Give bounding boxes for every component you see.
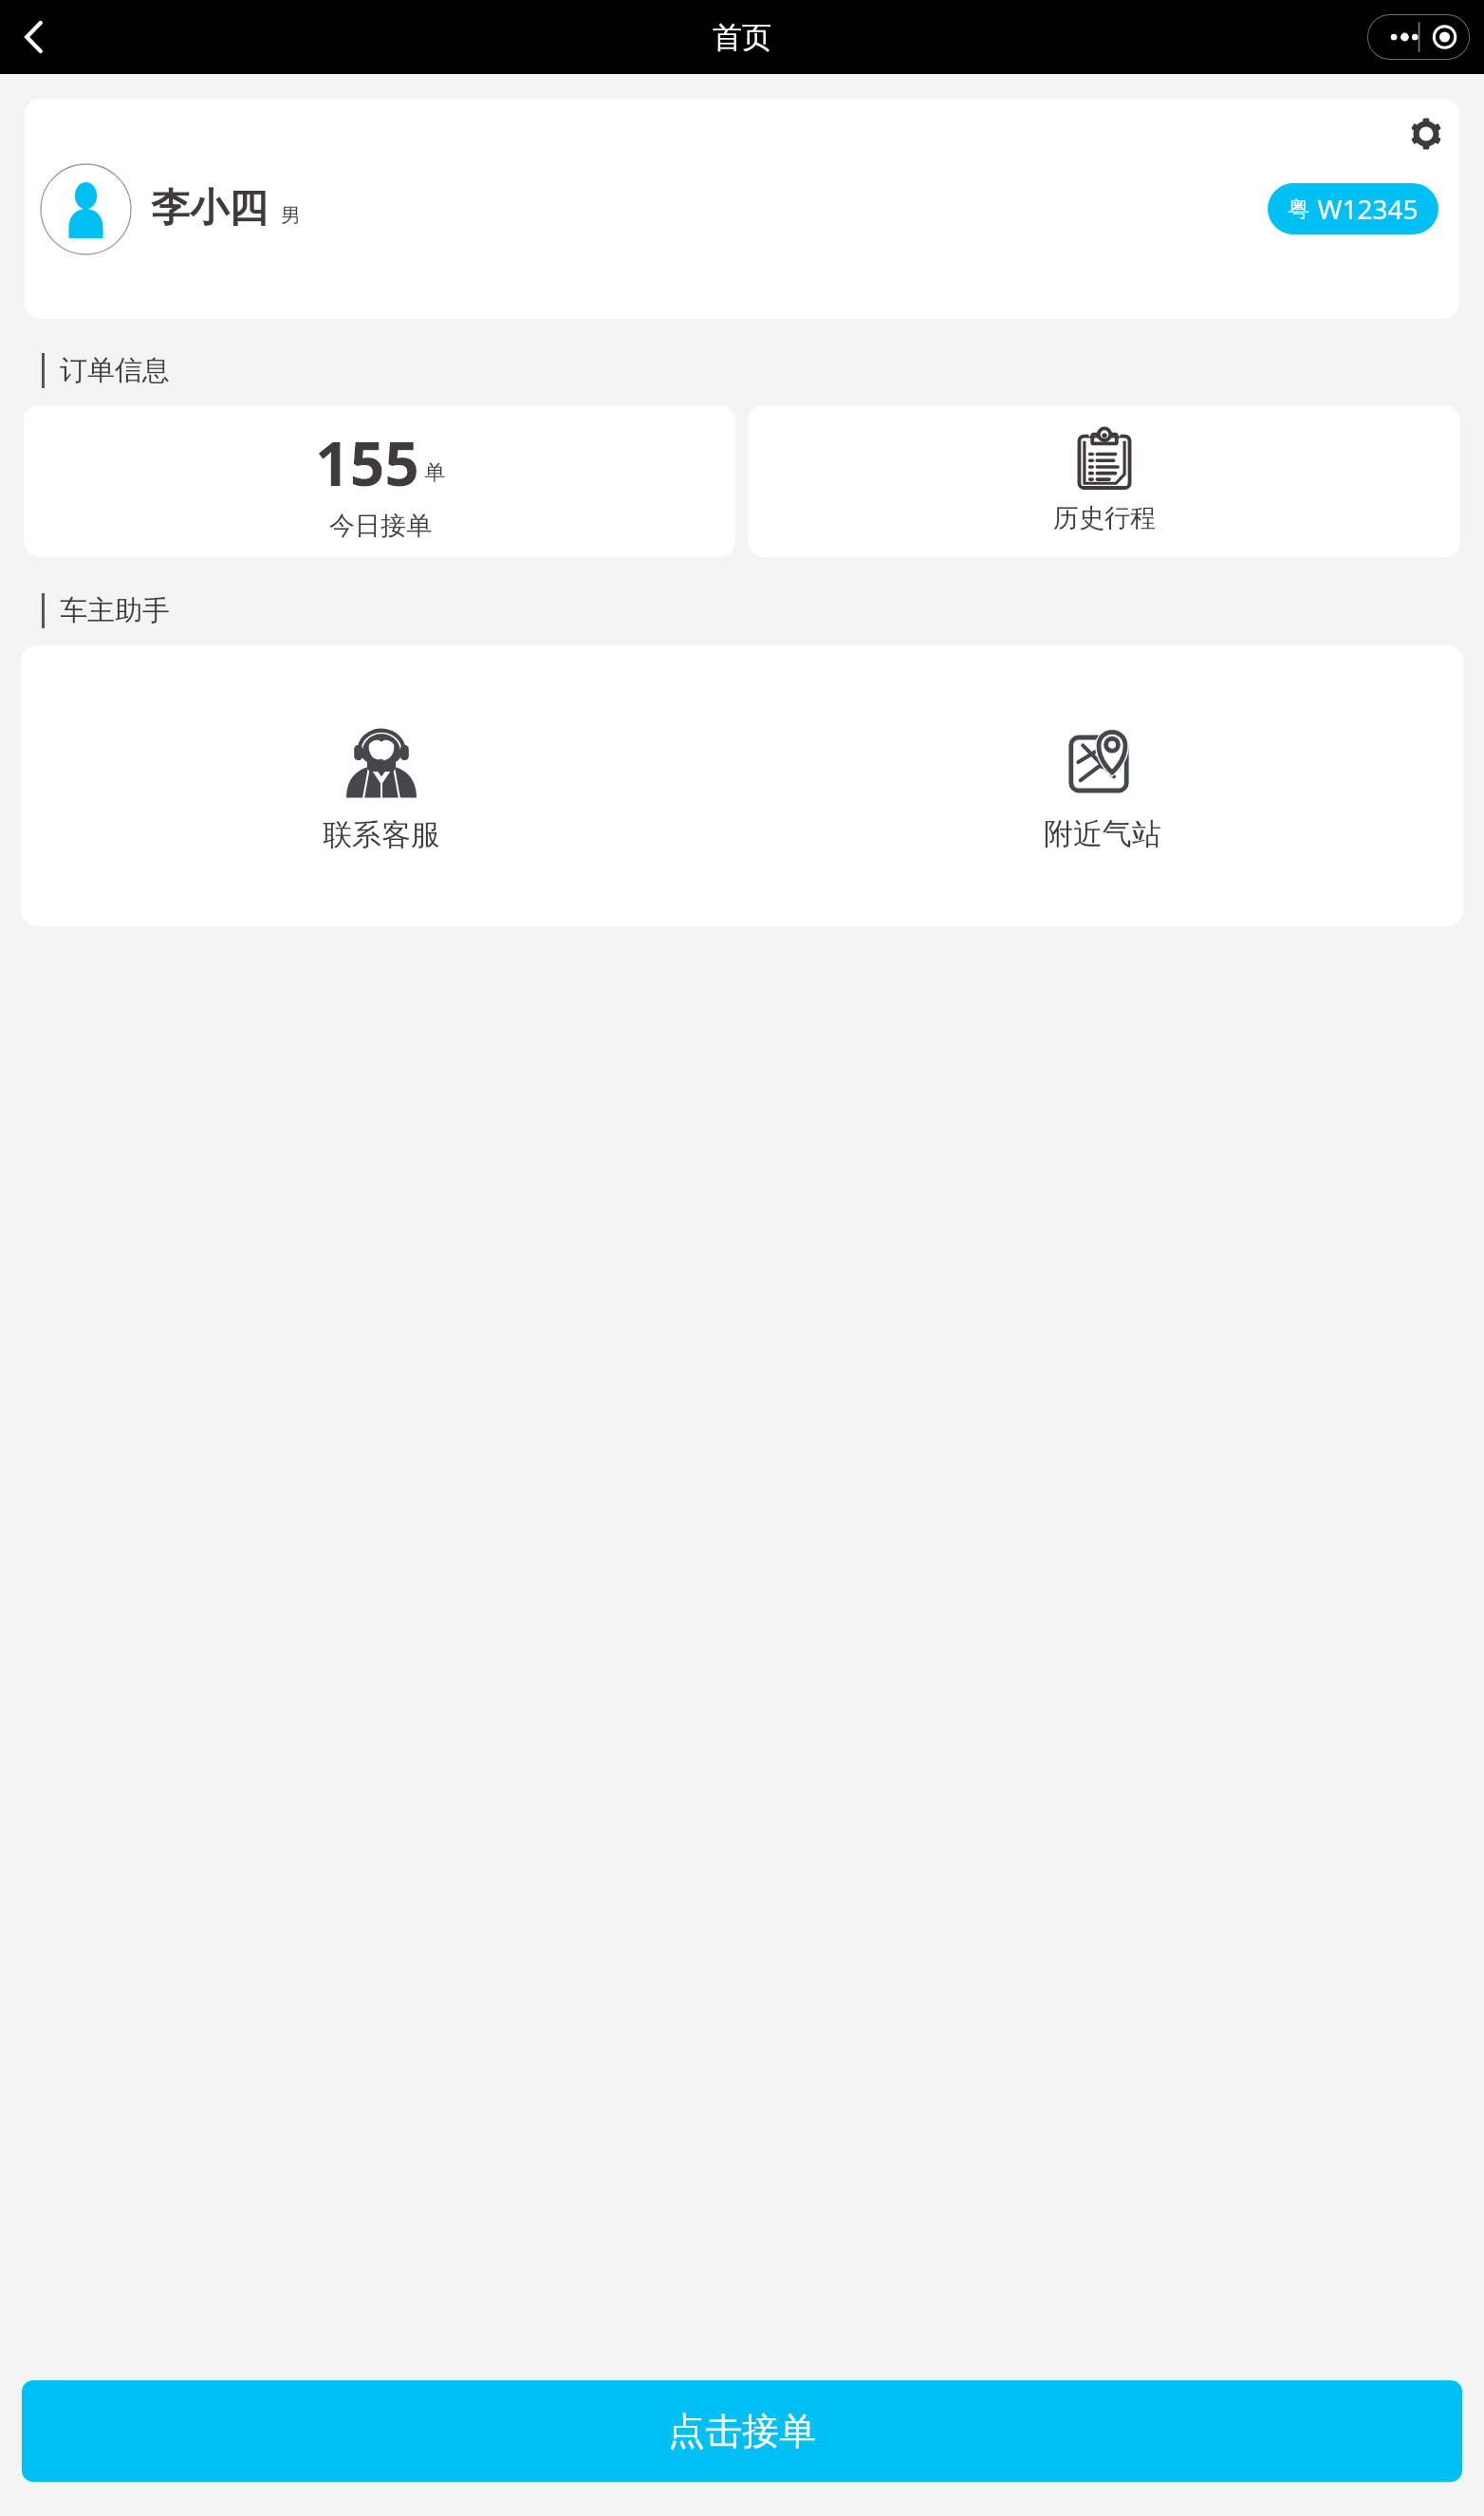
button[interactable]: 历史行程 <box>748 405 1460 557</box>
staticText: 男 <box>281 203 301 228</box>
staticText: 车主助手 <box>60 593 170 628</box>
button[interactable]: 附近气站 <box>742 645 1463 926</box>
staticText: 单 <box>424 459 445 486</box>
staticText: W12345 <box>1317 191 1419 227</box>
button[interactable]: Back <box>6 9 63 65</box>
staticText: 历史行程 <box>1053 502 1156 534</box>
button[interactable]: Settings <box>1399 106 1454 161</box>
button[interactable]: 联系客服 <box>21 645 742 926</box>
button[interactable]: 155 <box>24 405 735 557</box>
staticText: 155 <box>315 421 419 504</box>
staticText: 订单信息 <box>60 353 170 388</box>
staticText: 粤 <box>1288 196 1309 223</box>
button[interactable]: 李小四 <box>25 99 1459 319</box>
staticText: 首页 <box>713 19 771 56</box>
button[interactable]: 点击接单 <box>22 2380 1462 2482</box>
button[interactable]: More options <box>1367 14 1470 60</box>
staticText: 李小四 <box>151 184 268 233</box>
staticText: 附近气站 <box>1044 815 1161 852</box>
staticText: 今日接单 <box>329 510 432 542</box>
staticText: 联系客服 <box>323 816 440 853</box>
button[interactable]: 粤 <box>1288 183 1419 234</box>
staticText: 点击接单 <box>668 2408 816 2454</box>
